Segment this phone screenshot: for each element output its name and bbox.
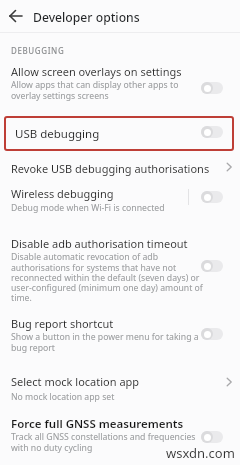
staticText: Disable adb authorisation timeout [11,236,188,251]
button[interactable] [201,126,223,138]
staticText: Allow apps that can display other apps t… [11,79,179,102]
button[interactable] [6,6,26,26]
button[interactable] [0,312,240,354]
staticText: Wireless debugging [11,186,114,201]
staticText: USB debugging [15,126,100,142]
staticText: Select mock location app [11,374,140,389]
button[interactable] [0,116,240,150]
button[interactable] [0,182,240,214]
button[interactable] [201,431,223,443]
staticText: Disable automatic revocation of adb auth… [11,251,203,304]
staticText: Allow screen overlays on settings [11,64,182,79]
staticText: Debug mode when Wi-Fi is connected [11,202,165,214]
button[interactable] [201,191,223,203]
staticText: Track all GNSS constellations and freque… [11,431,196,454]
button[interactable] [201,82,223,94]
staticText: DEBUGGING [11,45,65,56]
staticText: wsxdn.com [166,444,235,462]
button[interactable] [0,412,240,456]
button[interactable] [201,260,223,272]
button[interactable] [0,370,240,404]
button[interactable] [201,328,223,340]
staticText: Bug report shortcut [11,316,114,331]
staticText: No mock location app set [11,391,115,403]
staticText: Developer options [33,9,140,26]
staticText: Show a button in the power menu for taki… [11,331,199,354]
staticText: Force full GNSS measurements [11,416,184,432]
button[interactable] [0,155,240,179]
button[interactable] [0,232,240,306]
staticText: Revoke USB debugging authorisations [11,161,210,176]
button[interactable] [0,60,240,104]
